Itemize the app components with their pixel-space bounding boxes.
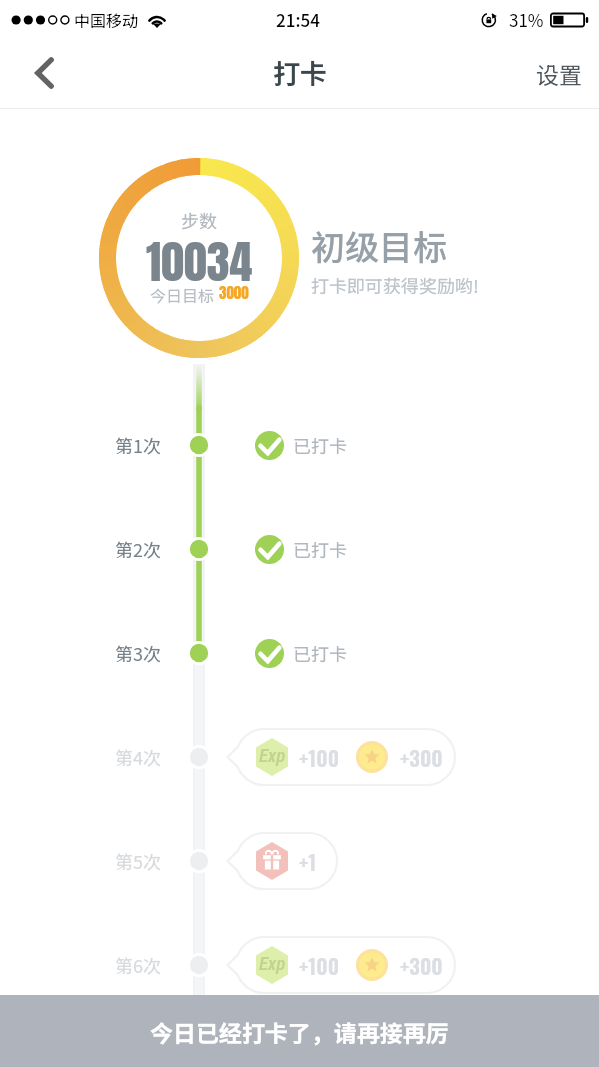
staticText: 10034 [146, 227, 253, 296]
staticText: 中国移动 [74, 8, 139, 31]
staticText: 第5次 [115, 848, 161, 874]
button[interactable]: 第2次 [0, 523, 599, 575]
staticText: 已打卡 [293, 432, 347, 458]
staticText: 第6次 [115, 952, 161, 978]
button[interactable]: 第4次 [0, 727, 599, 787]
button[interactable]: Back [0, 38, 76, 108]
staticText: 第4次 [115, 744, 161, 770]
staticText: 21:54 [276, 7, 320, 32]
staticText: 31% [509, 7, 544, 32]
staticText: 已打卡 [293, 640, 347, 666]
staticText: +100 [299, 742, 340, 773]
staticText: 打卡 [273, 53, 327, 92]
button[interactable]: 第6次 [0, 935, 599, 995]
staticText: 已打卡 [293, 536, 347, 562]
staticText: 打卡即可获得奖励哟! [311, 272, 479, 298]
staticText: 初级目标 [311, 221, 447, 270]
staticText: 今日已经打卡了，请再接再厉 [150, 1015, 449, 1048]
button[interactable]: 今日已经打卡了，请再接再厉 [0, 995, 599, 1067]
button[interactable]: 第5次 [0, 831, 599, 891]
staticText: +100 [299, 950, 340, 981]
staticText: 今日目标 [150, 283, 215, 306]
staticText: 第2次 [115, 536, 161, 562]
staticText: +1 [299, 846, 317, 877]
staticText: Exp [259, 744, 286, 766]
staticText: 第3次 [115, 640, 161, 666]
button[interactable]: 第3次 [0, 627, 599, 679]
button[interactable]: 第1次 [0, 419, 599, 471]
staticText: Exp [259, 952, 286, 974]
staticText: 步数 [181, 207, 217, 233]
staticText: 第1次 [115, 432, 161, 458]
staticText: 设置 [536, 57, 582, 90]
staticText: +300 [400, 950, 443, 981]
staticText: 3000 [219, 281, 249, 304]
staticText: +300 [400, 742, 443, 773]
button[interactable]: 设置 [516, 38, 599, 108]
